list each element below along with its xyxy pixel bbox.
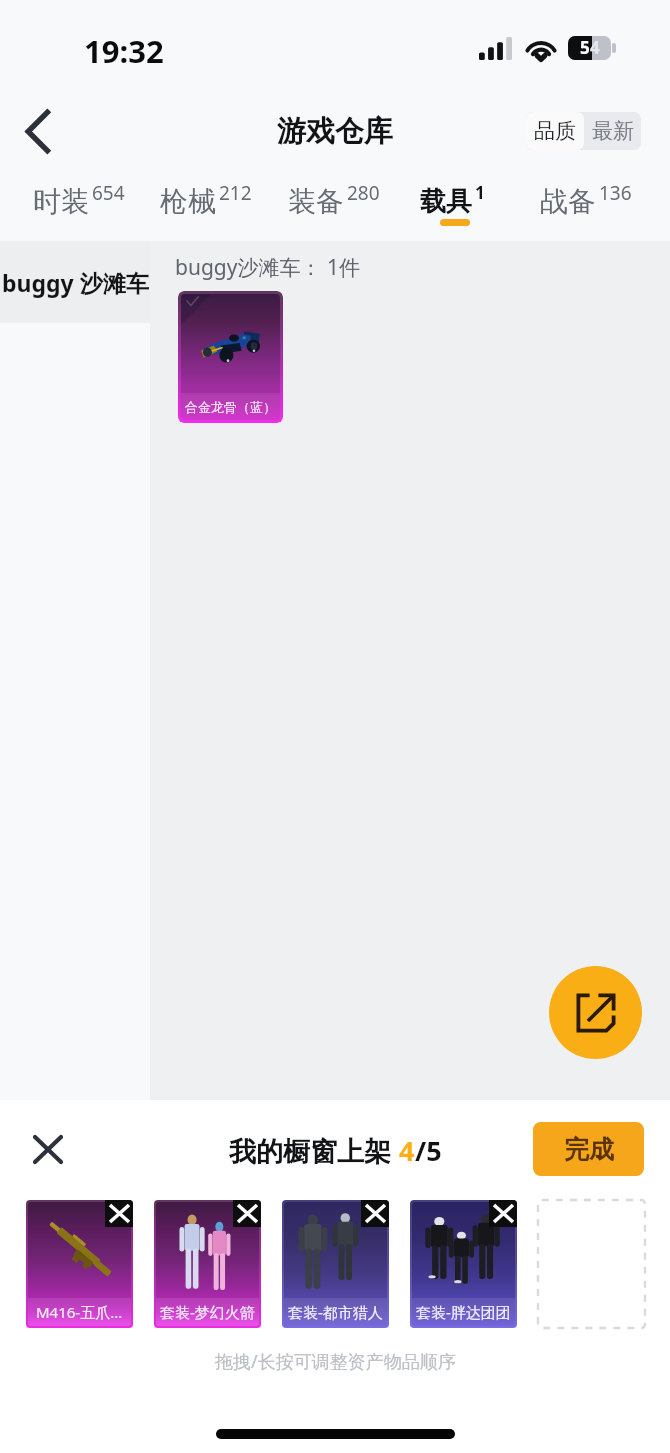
- staticText: 136: [599, 180, 632, 206]
- button[interactable]: 品质: [526, 112, 584, 150]
- button[interactable]: 载具: [395, 170, 509, 241]
- button[interactable]: Remove M416-五爪...: [105, 1200, 133, 1227]
- button[interactable]: 战备: [529, 170, 643, 241]
- staticText: 游戏仓库: [277, 113, 393, 150]
- staticText: /5: [415, 1132, 442, 1169]
- button[interactable]: 时装: [22, 170, 136, 241]
- staticText: 品质: [534, 118, 576, 144]
- staticText: 时装: [33, 184, 89, 219]
- button[interactable]: Share: [549, 966, 642, 1059]
- staticText: 5: [580, 36, 590, 59]
- button[interactable]: Remove 套装-胖达团团: [489, 1200, 517, 1227]
- staticText: 654: [92, 180, 125, 206]
- staticText: 载具: [420, 185, 472, 218]
- button[interactable]: 套装-胖达团团: [410, 1200, 517, 1328]
- staticText: 套装-都市猎人: [288, 1302, 383, 1322]
- staticText: buggy 沙滩车: [2, 267, 149, 298]
- staticText: 套装-胖达团团: [416, 1302, 511, 1322]
- staticText: 拖拽/长按可调整资产物品顺序: [215, 1349, 456, 1374]
- button[interactable]: 最新: [584, 112, 641, 150]
- staticText: 4: [399, 1132, 415, 1169]
- button[interactable]: 完成: [533, 1122, 644, 1176]
- button[interactable]: 枪械: [149, 170, 263, 241]
- button[interactable]: Close: [21, 1123, 74, 1176]
- staticText: buggy沙滩车： 1件: [175, 253, 360, 282]
- staticText: 战备: [540, 184, 596, 219]
- staticText: M416-五爪...: [36, 1302, 123, 1322]
- button[interactable]: 套装-都市猎人: [282, 1200, 389, 1328]
- staticText: 4: [590, 36, 600, 59]
- staticText: 280: [347, 180, 380, 206]
- button[interactable]: buggy 沙滩车: [0, 241, 150, 323]
- staticText: 枪械: [160, 184, 216, 219]
- staticText: 合金龙骨（蓝）: [185, 399, 276, 415]
- button[interactable]: M416-五爪...: [26, 1200, 133, 1328]
- staticText: 212: [219, 180, 252, 206]
- staticText: 我的橱窗上架: [229, 1132, 399, 1169]
- staticText: 完成: [564, 1134, 614, 1165]
- button[interactable]: 合金龙骨（蓝）: [178, 291, 283, 423]
- staticText: 最新: [592, 118, 634, 144]
- button[interactable]: 套装-梦幻火箭: [154, 1200, 261, 1328]
- button[interactable]: 装备: [277, 170, 391, 241]
- button[interactable]: Back: [10, 103, 66, 159]
- button[interactable]: Remove 套装-都市猎人: [361, 1200, 389, 1227]
- staticText: 19:32: [84, 30, 164, 72]
- staticText: 1: [475, 181, 485, 204]
- button[interactable]: Remove 套装-梦幻火箭: [233, 1200, 261, 1227]
- staticText: 装备: [288, 184, 344, 219]
- staticText: 套装-梦幻火箭: [160, 1302, 255, 1322]
